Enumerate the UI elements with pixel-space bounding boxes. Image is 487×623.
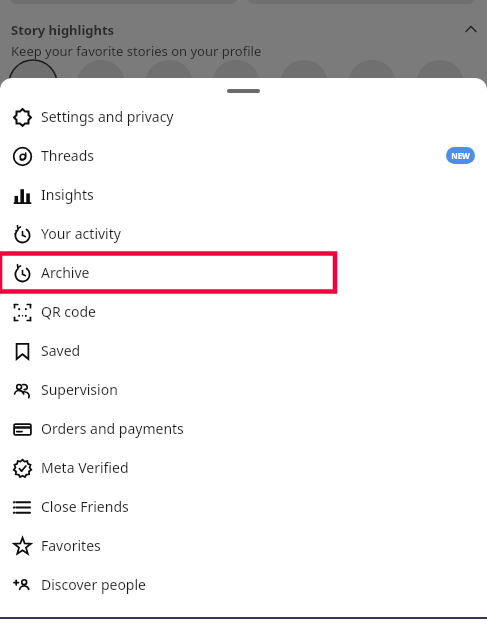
staticText: Story highlights — [11, 21, 115, 39]
button[interactable]: Supervision — [0, 370, 487, 409]
button[interactable]: Close Friends — [0, 487, 487, 526]
staticText: Favorites — [41, 536, 101, 555]
button[interactable]: Discover people — [0, 565, 487, 604]
staticText: Supervision — [41, 380, 118, 399]
staticText: Orders and payments — [41, 419, 184, 438]
staticText: Close Friends — [41, 497, 129, 516]
button[interactable]: QR code — [0, 292, 487, 331]
button[interactable]: Archive — [0, 253, 487, 292]
button[interactable]: Your activity — [0, 214, 487, 253]
button[interactable]: Threads — [0, 136, 487, 175]
button[interactable]: Orders and payments — [0, 409, 487, 448]
button[interactable]: Saved — [0, 331, 487, 370]
staticText: QR code — [41, 302, 96, 321]
button[interactable]: Insights — [0, 175, 487, 214]
staticText: Archive — [41, 263, 90, 282]
staticText: Settings and privacy — [41, 107, 174, 126]
staticText: Threads — [41, 146, 95, 165]
button[interactable]: Settings and privacy — [0, 97, 487, 136]
staticText: Discover people — [41, 575, 146, 594]
staticText: Keep your favorite stories on your profi… — [11, 42, 262, 60]
button[interactable]: Favorites — [0, 526, 487, 565]
staticText: NEW — [451, 150, 470, 161]
staticText: Saved — [41, 341, 81, 360]
staticText: Your activity — [41, 224, 121, 243]
button[interactable]: Meta Verified — [0, 448, 487, 487]
staticText: Insights — [41, 185, 94, 204]
staticText: Meta Verified — [41, 458, 129, 477]
